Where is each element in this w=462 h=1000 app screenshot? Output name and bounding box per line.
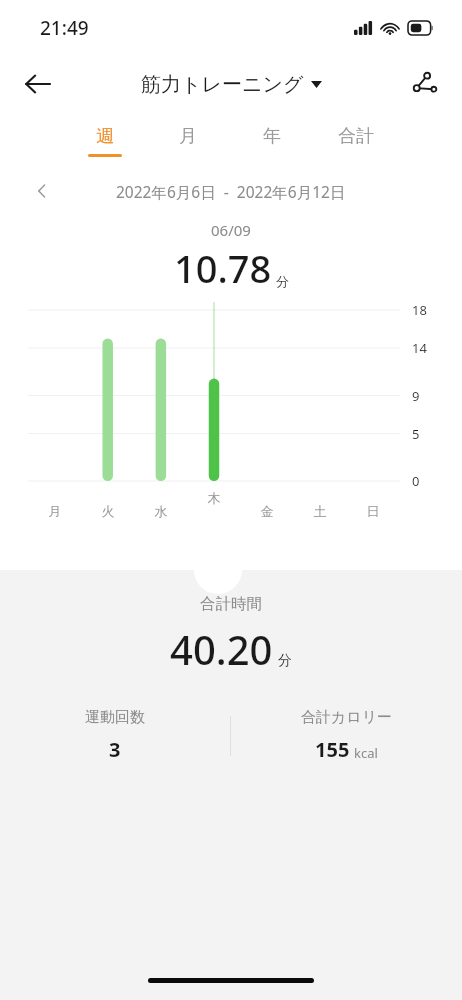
staticText: 木 (206, 490, 222, 506)
staticText: 分 (276, 273, 289, 289)
staticText: 9 (412, 387, 420, 405)
staticText: 14 (412, 339, 427, 357)
button[interactable]: Previous week (24, 173, 60, 209)
staticText: 合計 (338, 125, 374, 148)
staticText: 月 (179, 125, 197, 148)
button[interactable]: 年 (245, 121, 299, 161)
staticText: kcal (354, 744, 378, 762)
staticText: 3 (109, 736, 121, 763)
staticText: 筋力トレーニング (141, 72, 304, 97)
button[interactable]: Back (12, 58, 64, 110)
button[interactable]: 週 (78, 121, 132, 161)
staticText: 40.20 (170, 622, 273, 676)
staticText: 年 (263, 125, 281, 148)
button[interactable]: 月 (161, 121, 215, 161)
staticText: 5 (412, 425, 420, 443)
staticText: 155 (315, 736, 350, 763)
staticText: 月 (47, 503, 63, 519)
staticText: 分 (278, 652, 292, 670)
button[interactable]: Share (398, 58, 450, 110)
staticText: 週 (96, 125, 114, 148)
button[interactable]: 合計 (328, 121, 384, 161)
button[interactable]: 筋力トレーニング (133, 66, 330, 103)
staticText: 土 (312, 503, 328, 519)
staticText: 0 (412, 472, 420, 490)
button[interactable]: 合計カロリー (231, 708, 462, 763)
staticText: 2022年6月6日 - 2022年6月12日 (116, 181, 346, 202)
staticText: 21:49 (40, 15, 89, 41)
staticText: 合計時間 (200, 594, 262, 614)
staticText: 10.78 (174, 242, 272, 294)
staticText: 水 (153, 503, 169, 519)
staticText: 金 (259, 503, 275, 519)
button[interactable]: 運動回数 (0, 708, 230, 763)
staticText: 06/09 (211, 220, 251, 240)
staticText: 日 (365, 503, 381, 519)
staticText: 合計カロリー (301, 708, 393, 727)
staticText: 運動回数 (85, 708, 145, 727)
staticText: 18 (412, 301, 427, 319)
staticText: 火 (100, 503, 116, 519)
